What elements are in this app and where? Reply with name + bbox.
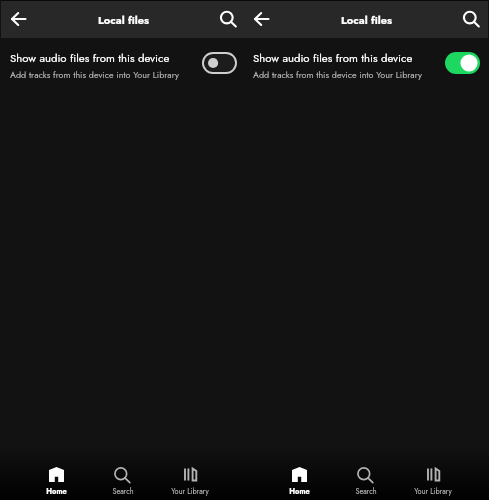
button[interactable]: Home bbox=[269, 466, 329, 500]
button[interactable]: Back bbox=[0, 0, 36, 38]
button[interactable]: Search bbox=[453, 0, 489, 38]
button[interactable]: Search bbox=[336, 466, 396, 500]
button[interactable]: Back bbox=[243, 0, 279, 38]
staticText: Home bbox=[46, 486, 67, 497]
staticText: Your Library bbox=[171, 486, 209, 497]
staticText: Search bbox=[355, 486, 377, 497]
staticText: Your Library bbox=[414, 486, 452, 497]
button[interactable]: Search bbox=[210, 0, 246, 38]
staticText: Add tracks from this device into Your Li… bbox=[253, 68, 423, 81]
staticText: Local files bbox=[98, 12, 150, 28]
button[interactable]: Your Library bbox=[160, 466, 220, 500]
button[interactable]: Show audio files from this device bbox=[202, 52, 237, 74]
staticText: Home bbox=[289, 486, 310, 497]
button[interactable]: Show audio files from this device bbox=[445, 52, 480, 74]
staticText: Local files bbox=[341, 12, 393, 28]
staticText: Show audio files from this device bbox=[10, 50, 170, 66]
button[interactable]: Search bbox=[93, 466, 153, 500]
staticText: Search bbox=[112, 486, 134, 497]
staticText: Show audio files from this device bbox=[253, 50, 413, 66]
staticText: Add tracks from this device into Your Li… bbox=[10, 68, 180, 81]
button[interactable]: Your Library bbox=[403, 466, 463, 500]
button[interactable]: Home bbox=[26, 466, 86, 500]
button[interactable]: Show audio files from this device bbox=[243, 38, 489, 88]
button[interactable]: Show audio files from this device bbox=[0, 38, 246, 88]
